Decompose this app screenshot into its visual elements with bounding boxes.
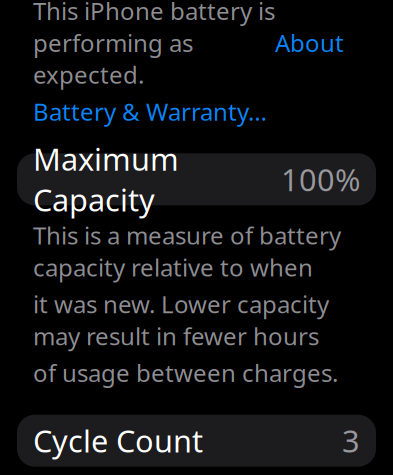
staticText: 100% bbox=[281, 159, 360, 200]
staticText: This iPhone battery is performing as exp… bbox=[33, 0, 275, 90]
staticText: This is a measure of battery capacity re… bbox=[33, 219, 341, 283]
staticText: of usage between charges. bbox=[33, 357, 338, 389]
staticText: Battery & Warranty… bbox=[33, 95, 267, 127]
staticText: Cycle Count bbox=[33, 420, 203, 461]
staticText: it was new. Lower capacity may result in… bbox=[33, 288, 329, 352]
button[interactable]: Maximum Capacity bbox=[17, 153, 376, 205]
staticText: 3 bbox=[342, 420, 360, 461]
staticText: About bbox=[275, 27, 344, 59]
button[interactable]: Cycle Count bbox=[17, 415, 376, 467]
staticText: Maximum Capacity bbox=[33, 139, 179, 220]
